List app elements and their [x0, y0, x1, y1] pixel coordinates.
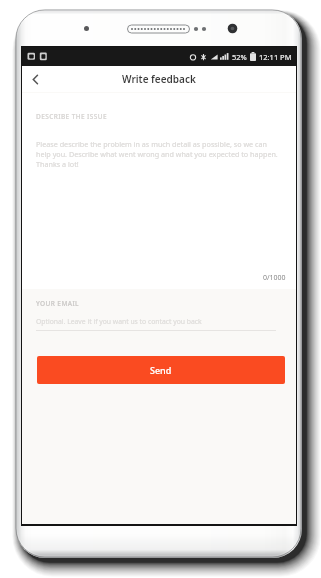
staticText: DESCRIBE THE ISSUE [36, 112, 107, 121]
button[interactable]: Send [37, 356, 285, 384]
staticText: 12:11 PM [259, 52, 292, 62]
staticText: Please describe the problem in as much d… [36, 139, 280, 169]
staticText: Write feedback [122, 72, 196, 86]
button[interactable]: Back [22, 66, 48, 92]
staticText: Send [150, 364, 172, 376]
staticText: 0/1000 [263, 273, 286, 283]
staticText: Optional. Leave it if you want us to con… [36, 317, 202, 326]
staticText: YOUR EMAIL [36, 299, 79, 308]
staticText: 52% [232, 52, 247, 62]
